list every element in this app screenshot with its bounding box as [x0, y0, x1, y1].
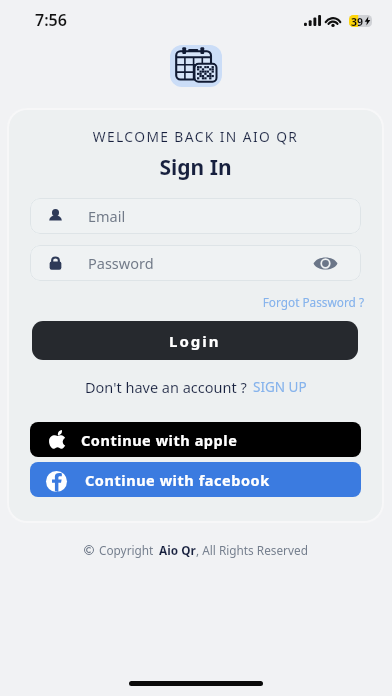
button[interactable]: Show password	[313, 256, 338, 271]
staticText: Forgot Password ?	[30, 294, 364, 310]
staticText: Continue with facebook	[85, 470, 270, 490]
staticText: WELCOME BACK IN AIO QR	[9, 127, 382, 146]
staticText: Login	[169, 331, 221, 351]
staticText: SIGN UP	[253, 378, 307, 396]
button[interactable]: Password	[30, 245, 361, 281]
button[interactable]: Email	[30, 198, 361, 234]
button[interactable]: Forgot Password ?	[30, 294, 364, 310]
staticText: Continue with apple	[81, 430, 238, 450]
staticText: Don't have an account ?	[85, 377, 247, 397]
staticText: 39	[351, 15, 364, 27]
staticText: Aio Qr	[159, 542, 196, 558]
staticText: , All Rights Reserved	[196, 542, 308, 558]
button[interactable]: Login	[32, 321, 358, 360]
button[interactable]: SIGN UP	[253, 378, 307, 397]
staticText: 7:56	[35, 9, 67, 31]
staticText: Sign In	[9, 153, 382, 182]
button[interactable]: Continue with facebook	[30, 462, 361, 497]
staticText: Email	[88, 206, 126, 226]
staticText: Password	[88, 253, 154, 273]
button[interactable]: Continue with apple	[30, 422, 361, 457]
staticText: Copyright	[99, 542, 154, 558]
